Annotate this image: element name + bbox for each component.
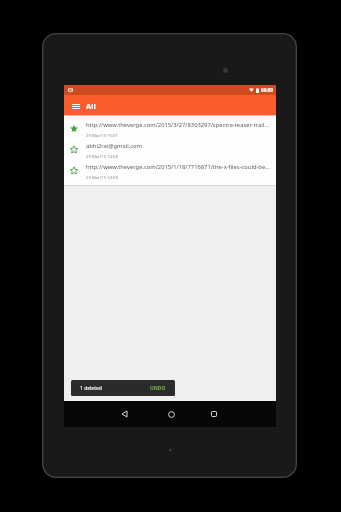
button[interactable]: abhi2rai@gmail.com xyxy=(64,137,276,158)
button[interactable] xyxy=(113,403,135,425)
button[interactable] xyxy=(160,403,182,425)
staticText: 00:09 xyxy=(261,87,273,93)
staticText: http://www.theverge.com/2015/1/18/771687… xyxy=(86,163,273,171)
button[interactable]: UNDO xyxy=(150,385,166,392)
button[interactable] xyxy=(64,96,84,116)
button[interactable]: http://www.theverge.com/2015/1/18/771687… xyxy=(64,158,276,179)
staticText: 29 Mar/15 14:58 xyxy=(86,175,118,181)
staticText: 1 deleted xyxy=(80,385,102,392)
staticText: abhi2rai@gmail.com xyxy=(86,142,273,150)
button[interactable] xyxy=(203,403,225,425)
staticText: http://www.theverge.com/2015/3/27/830329… xyxy=(86,121,273,129)
staticText: 29 Mar/15 15:01 xyxy=(86,133,118,139)
staticText: All xyxy=(86,101,96,111)
staticText: UNDO xyxy=(150,385,166,392)
button[interactable]: http://www.theverge.com/2015/3/27/830329… xyxy=(64,116,276,137)
staticText: 29 Mar/15 14:58 xyxy=(86,154,118,160)
